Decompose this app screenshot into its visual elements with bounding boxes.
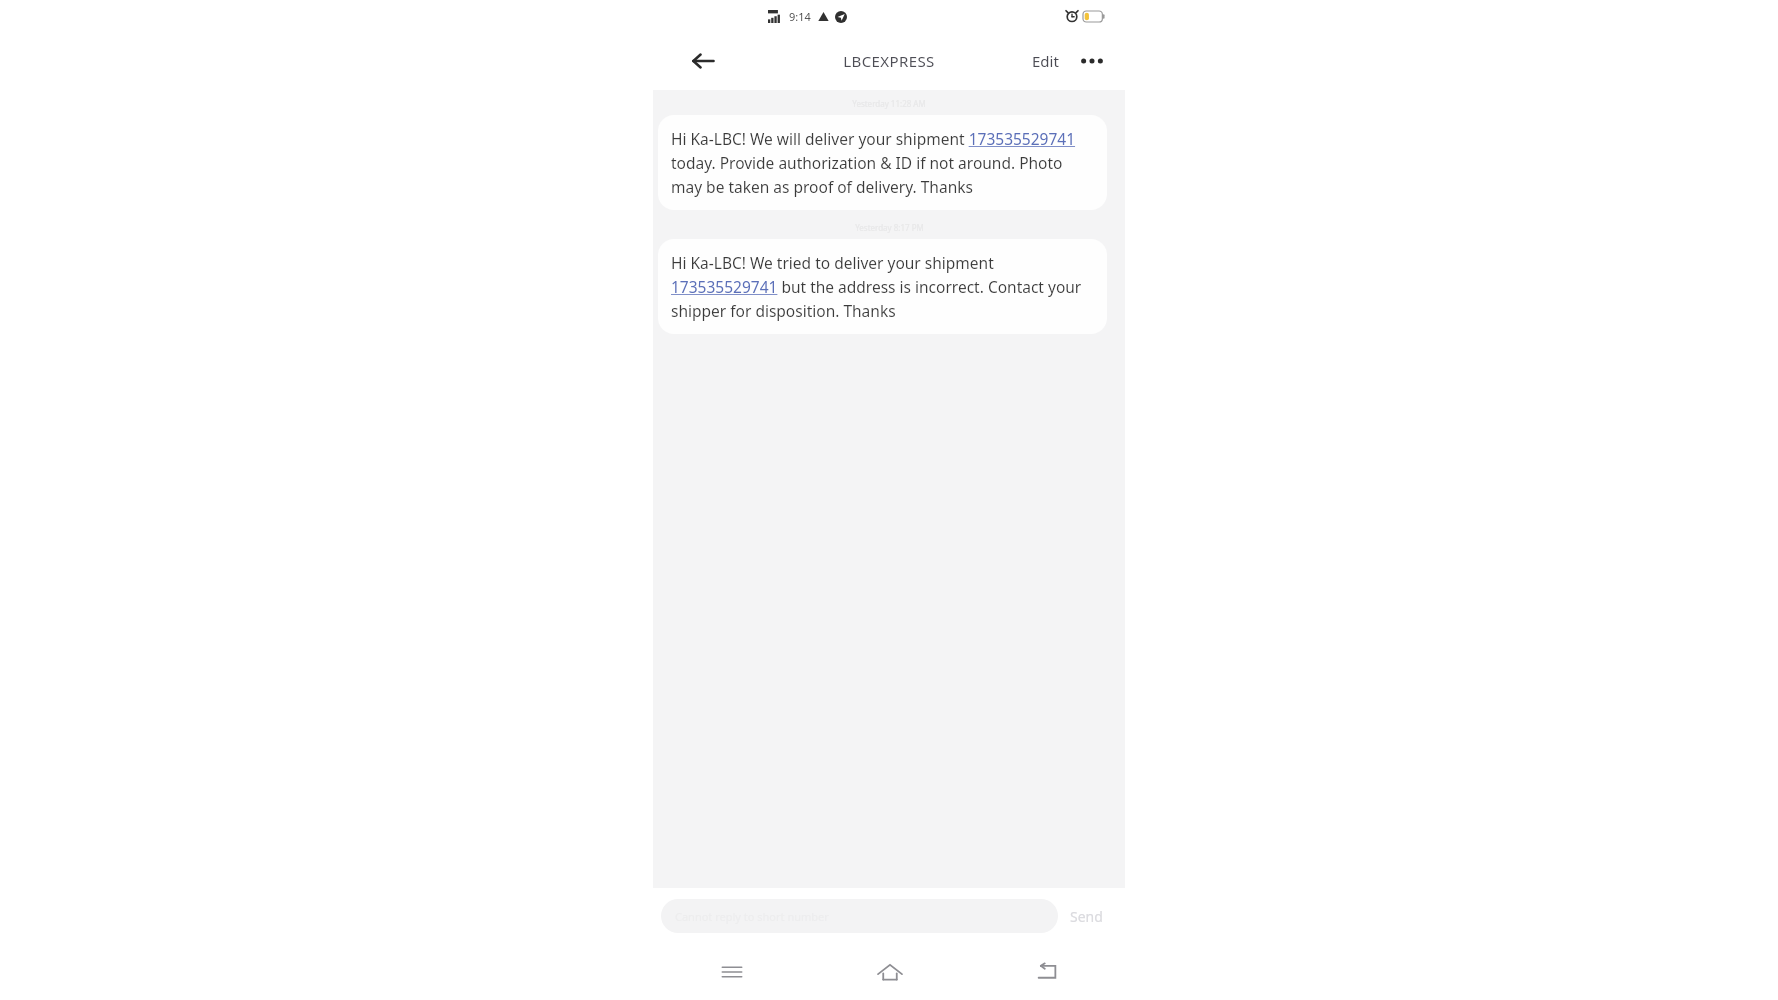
button[interactable]: Send (1058, 899, 1115, 934)
staticText: Hi Ka-LBC! We tried to deliver your ship… (671, 252, 1094, 321)
button[interactable]: Home (811, 944, 968, 1000)
button[interactable]: Hi Ka-LBC! We will deliver your shipment… (658, 115, 1107, 210)
button[interactable]: Back (683, 41, 723, 81)
staticText: Yesterday 8:17 PM (855, 222, 924, 233)
staticText: Edit (1032, 51, 1059, 71)
button[interactable]: Hi Ka-LBC! We tried to deliver your ship… (658, 239, 1107, 334)
button[interactable]: More options (1075, 44, 1109, 78)
staticText: 9:14 (789, 9, 811, 24)
staticText: Hi Ka-LBC! We will deliver your shipment… (671, 128, 1094, 197)
button[interactable]: Back (968, 944, 1125, 1000)
staticText: Yesterday 11:28 AM (852, 98, 926, 109)
button[interactable]: Edit (1026, 45, 1065, 77)
staticText: LBCEXPRESS (843, 51, 935, 71)
staticText: Send (1070, 907, 1103, 926)
button[interactable]: Recent apps (653, 944, 811, 1000)
